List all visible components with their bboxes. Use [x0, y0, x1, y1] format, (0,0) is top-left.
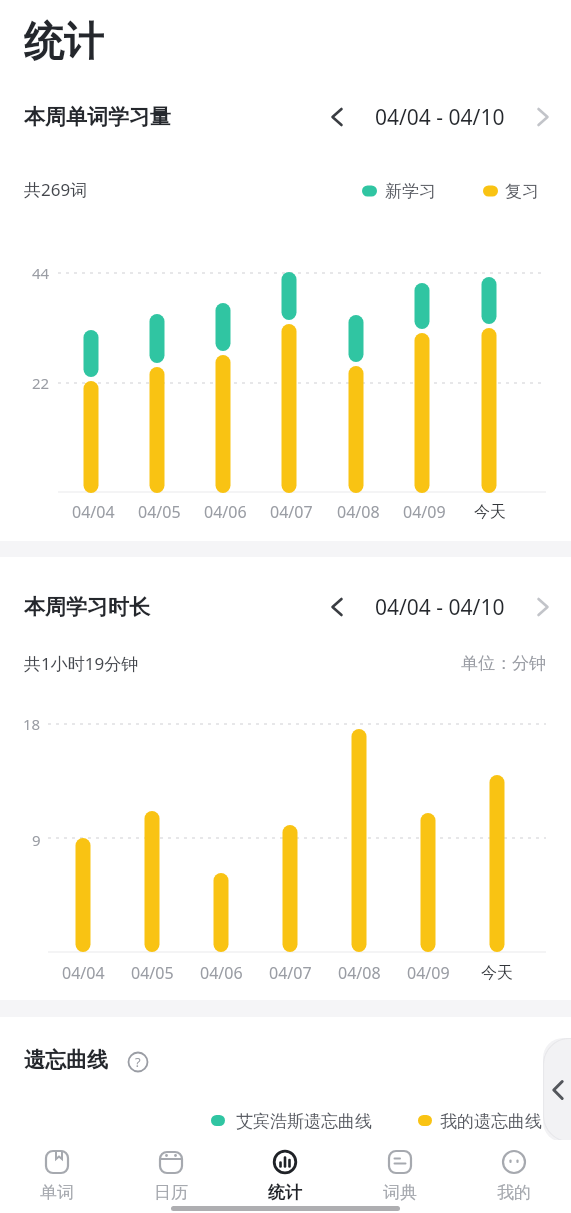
staticText: 遗忘曲线: [24, 1047, 108, 1073]
button[interactable]: 04/04 - 04/10: [320, 99, 560, 135]
staticText: 词典: [383, 1182, 417, 1203]
staticText: 04/09: [407, 962, 450, 984]
button[interactable]: 词典: [355, 1140, 445, 1213]
staticText: 艾宾浩斯遗忘曲线: [236, 1111, 372, 1132]
button[interactable]: [543, 1038, 571, 1142]
button[interactable]: 04/04 - 04/10: [320, 589, 560, 625]
staticText: 今天: [481, 963, 513, 983]
staticText: 04/05: [138, 501, 181, 523]
button[interactable]: 单词: [12, 1140, 102, 1213]
staticText: 9: [32, 830, 41, 850]
staticText: 共1小时19分钟: [24, 652, 139, 675]
staticText: 04/06: [204, 501, 247, 523]
staticText: 04/09: [403, 501, 446, 523]
staticText: 单位：分钟: [461, 653, 546, 674]
staticText: 04/04 - 04/10: [375, 593, 505, 622]
staticText: 统计: [268, 1182, 302, 1203]
staticText: 04/08: [337, 501, 380, 523]
staticText: 44: [32, 263, 50, 283]
staticText: 04/06: [200, 962, 243, 984]
staticText: 04/07: [269, 962, 312, 984]
staticText: 04/07: [270, 501, 313, 523]
button[interactable]: 统计: [240, 1140, 330, 1213]
staticText: 日历: [154, 1182, 188, 1203]
staticText: 22: [32, 373, 50, 393]
staticText: 04/05: [131, 962, 174, 984]
staticText: 共269词: [24, 178, 88, 201]
staticText: 本周学习时长: [24, 594, 150, 620]
staticText: 单词: [40, 1182, 74, 1203]
staticText: 04/04: [72, 501, 115, 523]
staticText: 复习: [505, 181, 539, 202]
button[interactable]: 日历: [126, 1140, 216, 1213]
staticText: ?: [135, 1053, 141, 1071]
staticText: 18: [23, 714, 41, 734]
staticText: 今天: [474, 502, 506, 522]
staticText: 04/08: [338, 962, 381, 984]
staticText: 统计: [24, 16, 104, 64]
staticText: 新学习: [385, 181, 436, 202]
button[interactable]: 我的: [469, 1140, 559, 1213]
staticText: 本周单词学习量: [24, 104, 171, 130]
staticText: 04/04 - 04/10: [375, 103, 505, 132]
staticText: 我的遗忘曲线: [440, 1111, 542, 1132]
staticText: 04/04: [62, 962, 105, 984]
staticText: 我的: [497, 1182, 531, 1203]
